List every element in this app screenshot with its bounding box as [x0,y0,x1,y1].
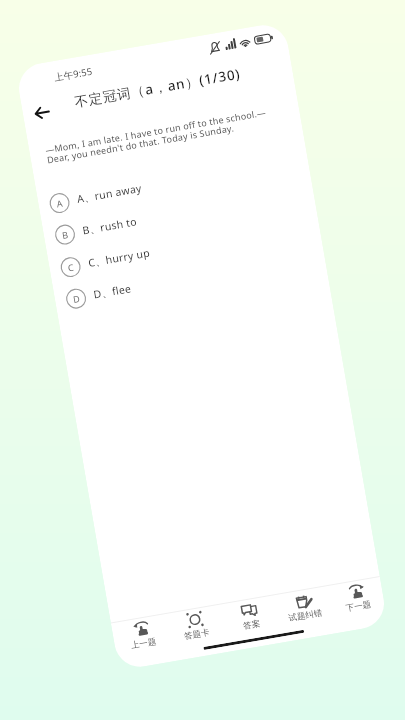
staticText: C [67,261,75,273]
staticText: Dear, you needn't do that. Today is Sund… [46,121,235,165]
button[interactable]: 下一题 [328,579,386,623]
button[interactable]: 试题纠错 [275,588,334,633]
staticText: B、rush to [81,214,138,237]
button[interactable]: C [49,213,296,286]
staticText: —Mom, I am late. I have to run off to th… [44,106,267,156]
button[interactable]: A [38,149,285,222]
staticText: A [56,197,64,209]
staticText: 下一题 [345,599,372,614]
staticText: 答案 [242,618,261,632]
staticText: 试题纠错 [288,607,323,624]
staticText: A、run away [76,181,143,206]
button[interactable]: 答案 [221,597,280,642]
button[interactable]: 上一题 [113,616,172,661]
staticText: 上一题 [130,636,158,651]
staticText: 上午9:55 [53,65,94,84]
staticText: B [61,228,69,241]
button[interactable]: D [55,244,302,318]
button[interactable]: B [44,180,290,254]
staticText: 不定冠词（a，an）(1/30) [73,65,242,111]
staticText: D [72,292,81,305]
staticText: D、flee [92,281,132,301]
button[interactable]: Back [28,99,56,127]
button[interactable]: 答题卡 [166,607,226,651]
staticText: C、hurry up [87,245,151,270]
staticText: 答题卡 [183,627,211,642]
